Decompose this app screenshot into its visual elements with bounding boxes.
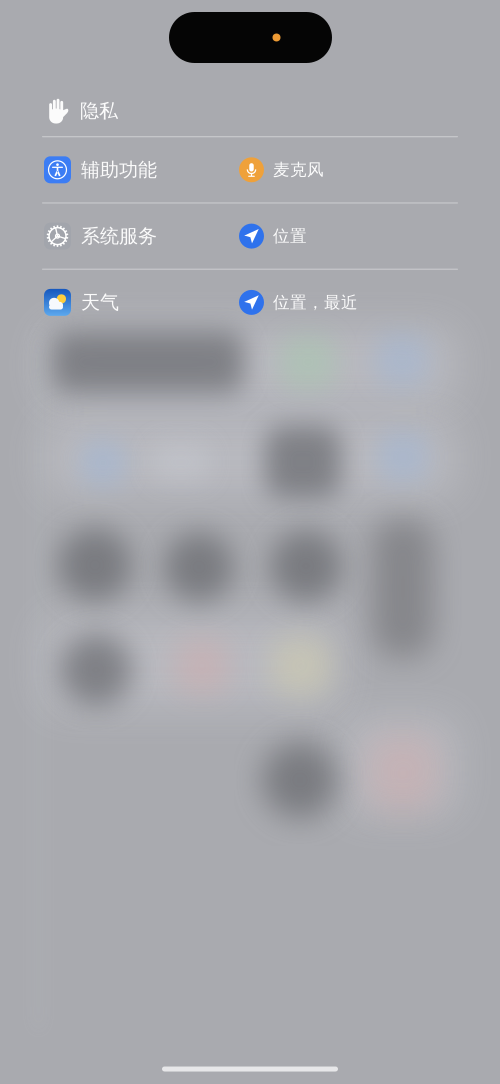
button[interactable]: 系统服务 xyxy=(0,204,500,269)
staticText: 位置 xyxy=(273,226,307,246)
staticText: 位置，最近 xyxy=(273,292,358,313)
staticText: 系统服务 xyxy=(81,224,157,248)
staticText: 天气 xyxy=(81,290,119,314)
button[interactable]: 辅助功能 xyxy=(0,137,500,202)
staticText: 麦克风 xyxy=(273,159,324,180)
staticText: 隐私 xyxy=(80,99,118,123)
staticText: 辅助功能 xyxy=(81,158,157,182)
button[interactable]: 天气 xyxy=(0,270,500,335)
